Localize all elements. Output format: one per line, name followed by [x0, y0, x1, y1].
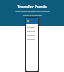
- button[interactable]: [27, 25, 37, 29]
- button[interactable]: [26, 18, 38, 24]
- button[interactable]: [27, 33, 37, 37]
- staticText: Transfer Funds: [17, 4, 47, 9]
- staticText: Move money between your accounts: [15, 10, 50, 13]
- staticText: quickly and securely: [23, 14, 42, 17]
- button[interactable]: [27, 29, 37, 33]
- button[interactable]: [27, 37, 37, 41]
